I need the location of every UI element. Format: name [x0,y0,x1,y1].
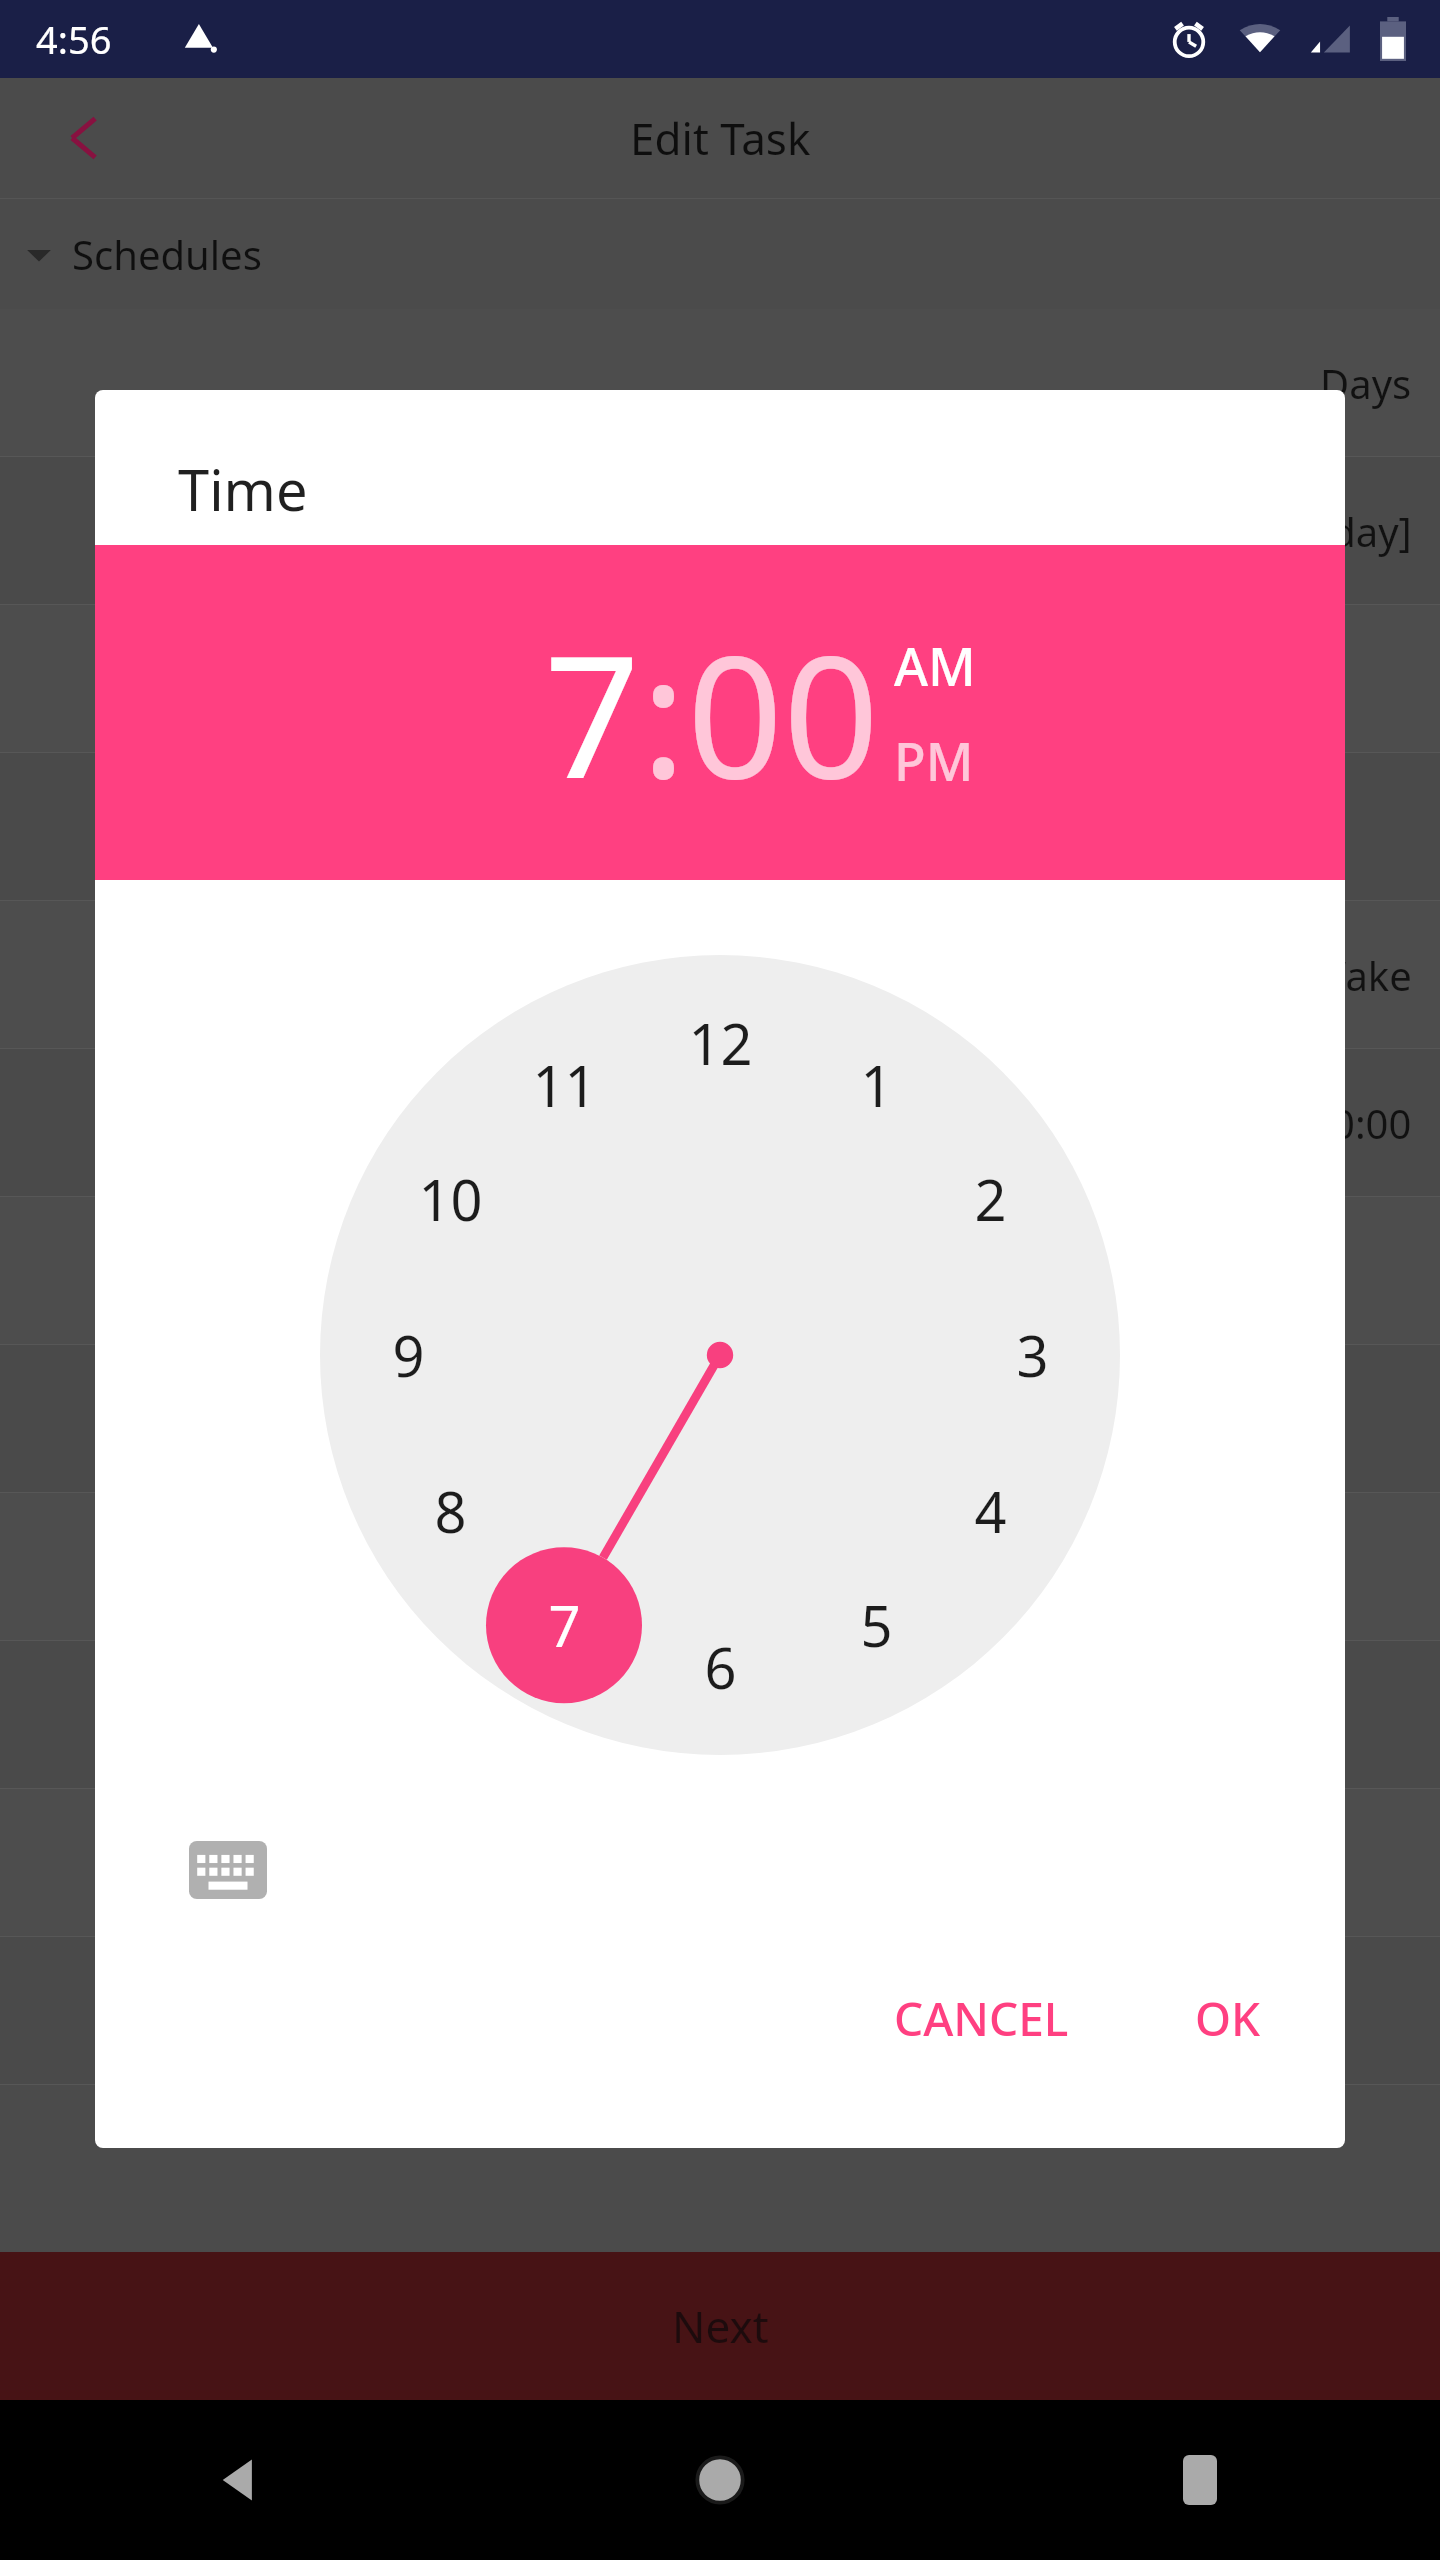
button[interactable]: OK [1169,1967,1287,2070]
staticText: 7 [548,1587,581,1663]
staticText: Days [1320,356,1412,410]
button[interactable]: AM [894,630,976,701]
staticText: Schedules [72,227,262,281]
staticText: [day] [1318,504,1412,558]
button[interactable]: CANCEL [868,1967,1095,2070]
staticText: 4 [974,1473,1007,1549]
button[interactable]: Switch to text input mode [180,1822,276,1918]
button[interactable]: 7 [544,598,641,827]
button[interactable]: Recent apps [960,2400,1440,2560]
staticText: Next [672,2296,769,2356]
staticText: OK [1195,1987,1261,2050]
staticText: 9 [392,1317,425,1393]
button[interactable]: Back [0,2400,480,2560]
button[interactable]: PM [894,725,974,796]
staticText: Edit Task [630,108,811,168]
staticText: 3 [1016,1317,1049,1393]
staticText: 10 [418,1161,483,1237]
staticText: 12 [688,1005,753,1081]
staticText: 2 [974,1161,1007,1237]
button[interactable]: 00 [687,598,880,827]
staticText: CANCEL [894,1987,1069,2050]
staticText: Wake [1309,948,1412,1002]
staticText: 5 [860,1587,893,1663]
staticText: 4:56 [36,13,112,65]
staticText: 1 [860,1047,893,1123]
staticText: : [641,598,687,827]
staticText: Time [178,451,308,527]
button[interactable]: Home [480,2400,960,2560]
button[interactable] [320,955,1120,1755]
staticText: 6 [704,1629,737,1705]
staticText: 11 [532,1047,597,1123]
staticText: 8 [434,1473,467,1549]
staticText: 0:00 [1332,1096,1412,1150]
